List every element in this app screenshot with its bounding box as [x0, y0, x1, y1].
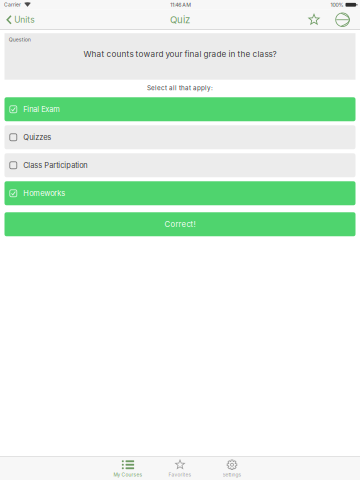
button[interactable]: Browse: [332, 9, 352, 30]
staticText: 11:46 AM: [170, 2, 191, 8]
staticText: Question: [9, 36, 31, 43]
staticText: Select all that apply:: [147, 84, 213, 92]
button[interactable]: Favorites: [154, 456, 206, 480]
button[interactable]: Quizzes: [4, 125, 355, 149]
button[interactable]: Class Participation: [4, 153, 355, 177]
staticText: Class Participation: [23, 161, 87, 170]
staticText: Settings: [222, 472, 241, 478]
button[interactable]: Homeworks: [4, 181, 355, 205]
staticText: Correct!: [164, 220, 195, 229]
staticText: Homeworks: [23, 189, 65, 198]
staticText: Final Exam: [23, 105, 60, 114]
staticText: What counts toward your final grade in t…: [83, 49, 276, 59]
button[interactable]: Favorite: [295, 9, 332, 30]
staticText: Units: [14, 15, 34, 25]
staticText: Favorites: [168, 472, 191, 478]
button[interactable]: Settings: [206, 456, 258, 480]
button[interactable]: Correct!: [4, 212, 355, 236]
staticText: Quizzes: [23, 133, 51, 142]
staticText: Quiz: [170, 14, 190, 25]
button[interactable]: Units: [0, 9, 38, 30]
button[interactable]: Final Exam: [4, 97, 355, 121]
staticText: My Courses: [113, 472, 142, 478]
button[interactable]: My Courses: [102, 456, 154, 480]
staticText: 100%: [330, 2, 343, 8]
staticText: Carrier: [4, 2, 21, 8]
